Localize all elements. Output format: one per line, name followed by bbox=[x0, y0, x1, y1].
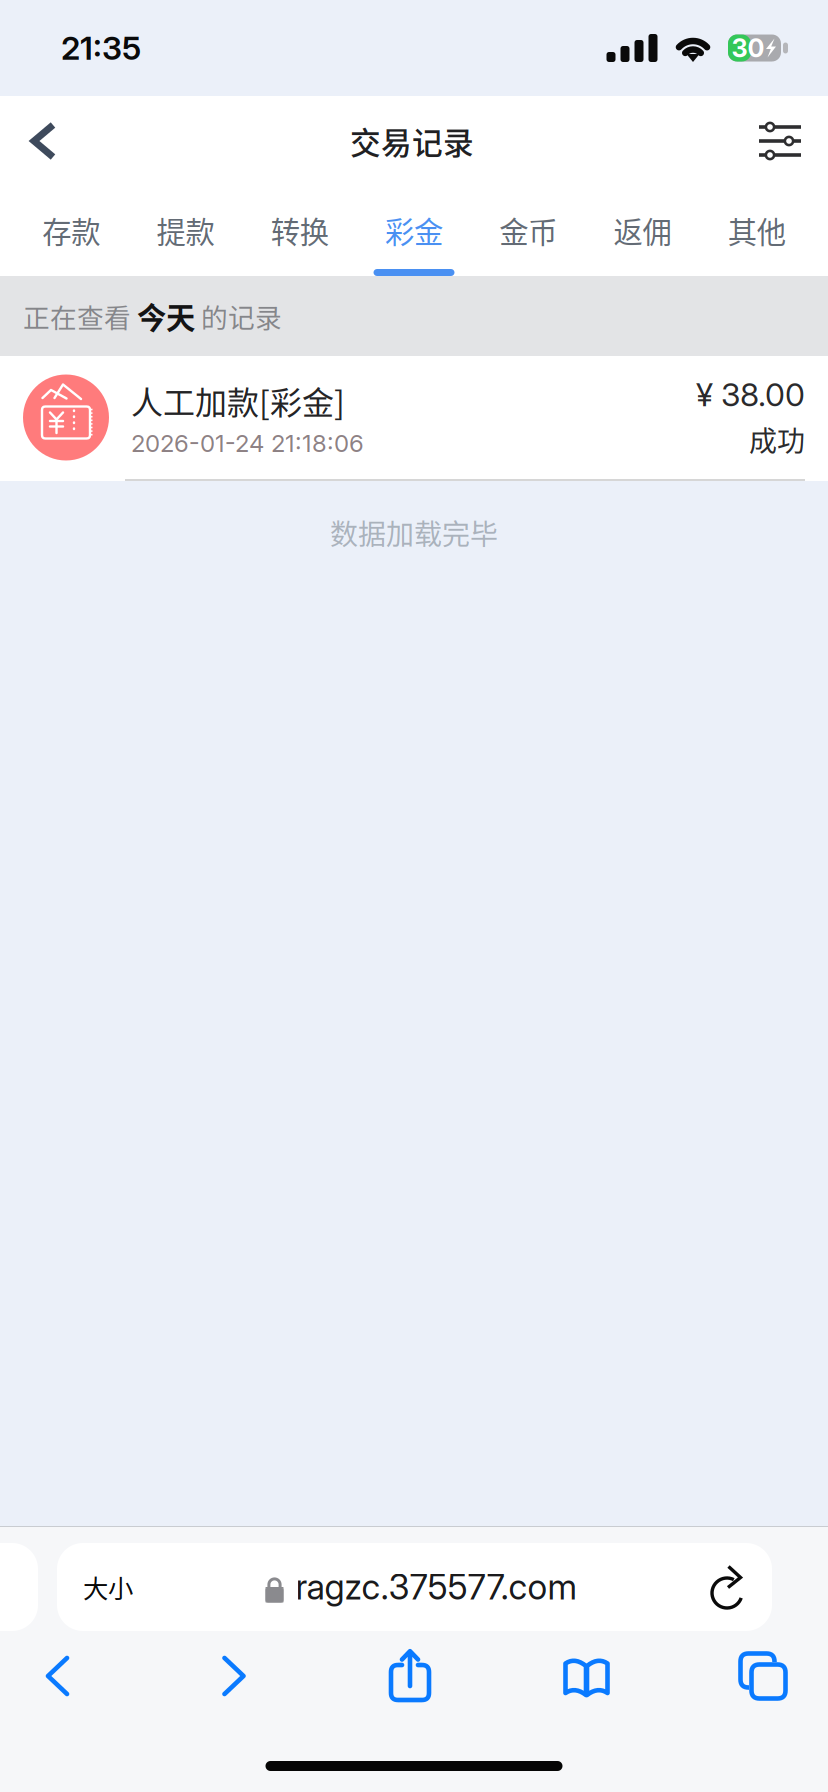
button[interactable]: 提款 bbox=[128, 186, 243, 276]
staticText: 提款 bbox=[156, 209, 214, 251]
button[interactable]: Bookmarks bbox=[548, 1645, 624, 1707]
button[interactable]: Forward bbox=[195, 1653, 271, 1699]
staticText: 的记录 bbox=[195, 297, 282, 335]
staticText: 今天 bbox=[137, 295, 195, 337]
staticText: 成功 bbox=[749, 419, 805, 460]
staticText: 21:35 bbox=[61, 29, 141, 67]
staticText: 其他 bbox=[728, 209, 786, 251]
button[interactable]: Share bbox=[372, 1645, 448, 1707]
staticText: 正在查看 bbox=[23, 297, 137, 335]
button[interactable]: Back bbox=[8, 112, 66, 170]
button[interactable]: 大小 bbox=[57, 1543, 772, 1631]
button[interactable]: 其他 bbox=[700, 186, 814, 276]
button[interactable]: Back bbox=[19, 1653, 95, 1699]
staticText: ¥ 38.00 bbox=[696, 375, 805, 414]
button[interactable]: 彩金 bbox=[357, 186, 471, 276]
staticText: 大小 bbox=[83, 1569, 133, 1605]
button[interactable]: 存款 bbox=[14, 186, 128, 276]
staticText: ragzc.375577.com bbox=[295, 1566, 577, 1608]
button[interactable]: 返佣 bbox=[585, 186, 700, 276]
staticText: 返佣 bbox=[614, 209, 672, 251]
button[interactable]: 转换 bbox=[243, 186, 357, 276]
button[interactable]: Filter bbox=[758, 119, 802, 163]
button[interactable]: Tabs bbox=[725, 1645, 801, 1707]
staticText: 人工加款[彩金] bbox=[131, 377, 345, 424]
staticText: 金币 bbox=[499, 209, 557, 251]
staticText: 彩金 bbox=[385, 209, 443, 251]
staticText: 30 bbox=[731, 33, 764, 63]
button[interactable]: 金币 bbox=[471, 186, 585, 276]
staticText: 存款 bbox=[42, 209, 100, 251]
staticText: 数据加载完毕 bbox=[330, 512, 498, 553]
staticText: 交易记录 bbox=[350, 119, 474, 163]
staticText: 转换 bbox=[271, 209, 329, 251]
staticText: 2026-01-24 21:18:06 bbox=[131, 429, 364, 458]
button[interactable]: 人工加款[彩金] bbox=[0, 356, 828, 481]
